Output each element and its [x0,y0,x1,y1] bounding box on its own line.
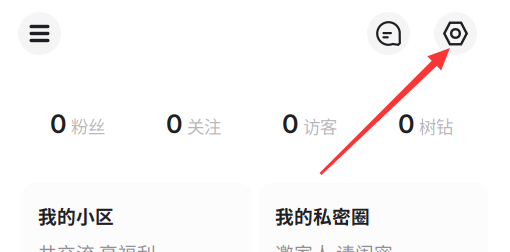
staticText: 访客 [303,113,337,138]
staticText: 共交流 享福利 [38,239,156,252]
staticText: 0 [166,109,183,139]
button[interactable]: 0 [282,107,398,141]
button[interactable]: Messages [367,12,410,55]
staticText: 树钻 [419,113,453,138]
button[interactable]: 0 [50,107,166,141]
button[interactable]: 0 [398,107,510,141]
staticText: 关注 [187,113,221,138]
button[interactable]: 我的小区 [22,183,251,252]
staticText: 邀家人 请闺密 [275,239,393,252]
staticText: 0 [282,109,299,139]
staticText: 我的小区 [38,202,114,229]
staticText: 我的私密圈 [275,202,370,229]
staticText: 0 [50,109,67,139]
staticText: 0 [398,109,415,139]
button[interactable]: 我的私密圈 [259,183,488,252]
button[interactable]: 0 [166,107,282,141]
staticText: 粉丝 [71,113,105,138]
button[interactable]: Settings [434,12,477,55]
button[interactable]: Menu [18,12,61,55]
